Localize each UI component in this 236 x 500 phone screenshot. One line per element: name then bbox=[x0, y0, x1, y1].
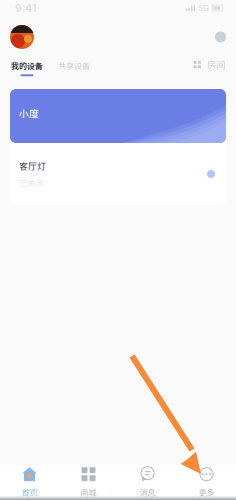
staticText: 我的设备 bbox=[11, 60, 43, 71]
button[interactable]: 首页 bbox=[0, 460, 59, 500]
staticText: 更多 bbox=[198, 486, 214, 498]
button[interactable]: 商城 bbox=[59, 460, 118, 500]
staticText: 客厅灯 bbox=[19, 159, 46, 172]
button[interactable]: 添加设备 bbox=[215, 31, 226, 42]
button[interactable]: 我的设备 bbox=[11, 60, 43, 80]
button[interactable]: 消息 bbox=[118, 460, 177, 500]
button[interactable]: 共享设备 bbox=[43, 60, 90, 80]
staticText: 5G bbox=[198, 3, 209, 13]
staticText: 小度 bbox=[19, 106, 39, 120]
button[interactable]: 个人中心 bbox=[10, 25, 34, 49]
staticText: 首页 bbox=[21, 486, 37, 498]
staticText: 已关闭 bbox=[19, 177, 43, 189]
button[interactable]: 房间 bbox=[194, 58, 225, 80]
staticText: 房间 bbox=[207, 58, 225, 71]
staticText: 商城 bbox=[80, 486, 96, 498]
staticText: 消息 bbox=[139, 486, 155, 498]
staticText: 9:41 bbox=[15, 1, 37, 14]
staticText: 共享设备 bbox=[58, 60, 90, 71]
button[interactable]: 更多 bbox=[177, 460, 236, 500]
